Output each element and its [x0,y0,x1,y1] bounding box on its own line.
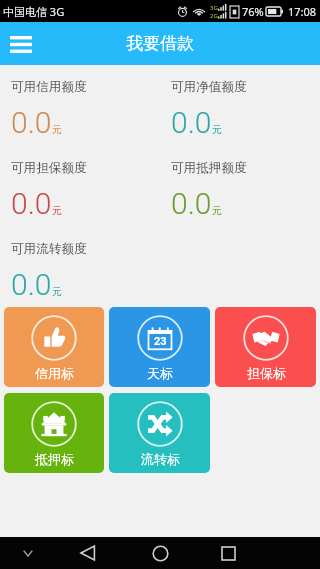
button[interactable]: 担保标 [215,307,316,387]
staticText: 可用信用额度 [11,79,87,95]
button[interactable]: Menu [0,23,42,65]
staticText: 23 [154,335,167,348]
staticText: 2G [210,12,218,19]
staticText: 3G [210,4,218,12]
button[interactable]: Hide navigation bar [6,537,50,569]
button[interactable]: 23 [109,307,210,387]
staticText: 元 [212,123,222,136]
button[interactable]: Home [136,537,184,569]
staticText: 流转标 [141,451,180,467]
staticText: 76% [242,4,264,19]
staticText: 我要借款 [126,33,194,54]
staticText: 元 [52,123,62,136]
staticText: 元 [52,285,62,298]
button[interactable]: Back [64,537,112,569]
button[interactable]: 流转标 [109,393,210,473]
staticText: 0.0 [11,186,52,221]
staticText: 天标 [147,365,173,381]
staticText: 可用担保额度 [11,160,87,176]
staticText: 0.0 [11,105,52,140]
button[interactable]: 抵押标 [4,393,104,473]
staticText: 元 [52,204,62,217]
staticText: 抵押标 [35,451,74,467]
staticText: 可用净值额度 [171,79,247,95]
staticText: 元 [212,204,222,217]
button[interactable]: Recent apps [204,537,252,569]
staticText: 0.0 [11,267,52,302]
staticText: 中国电信 3G [3,4,65,19]
staticText: 担保标 [247,365,286,381]
staticText: 17:08 [288,4,317,19]
staticText: 可用抵押额度 [171,160,247,176]
button[interactable]: 信用标 [4,307,104,387]
staticText: 可用流转额度 [11,241,87,257]
staticText: 0.0 [171,186,212,221]
staticText: 信用标 [35,365,74,381]
staticText: 0.0 [171,105,212,140]
